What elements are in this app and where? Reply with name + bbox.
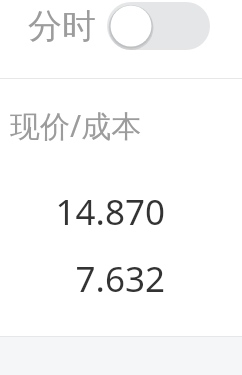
staticText: 14.870 [0,188,165,236]
button[interactable]: 分时 toggle [107,2,210,50]
button[interactable]: 分时 [0,0,242,52]
staticText: 分时 [28,5,96,48]
staticText: 7.632 [0,255,165,303]
staticText: 现价/成本 [10,105,142,146]
